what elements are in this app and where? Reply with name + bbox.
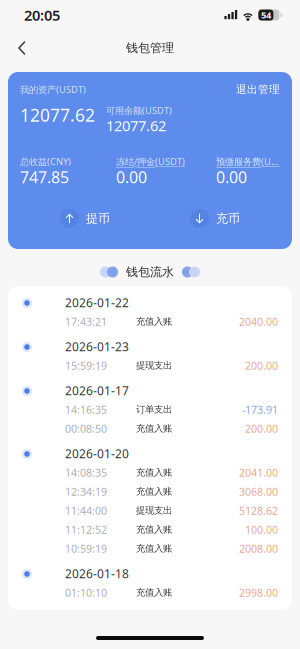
staticText: 15:59:19 [65, 358, 107, 373]
staticText: 充币 [216, 211, 240, 226]
staticText: 钱包管理 [126, 41, 174, 55]
staticText: 2026-01-22 [65, 294, 129, 310]
button[interactable]: 充币 [150, 206, 280, 230]
staticText: 2026-01-17 [65, 382, 129, 398]
staticText: 11:44:00 [65, 503, 107, 518]
staticText: 退出管理 [236, 83, 280, 96]
staticText: 54 [261, 9, 271, 21]
staticText: 提币 [86, 211, 110, 226]
staticText: 充值入账 [136, 486, 172, 497]
staticText: 0.00 [116, 166, 147, 188]
staticText: 14:08:35 [65, 465, 107, 480]
staticText: 充值入账 [136, 543, 172, 554]
button[interactable]: 退出管理 [236, 83, 280, 96]
staticText: 200.00 [245, 358, 278, 373]
staticText: 3068.00 [239, 484, 278, 499]
staticText: 17:43:21 [65, 314, 107, 329]
staticText: 我的资产(USDT) [20, 83, 86, 96]
staticText: 2008.00 [239, 541, 278, 556]
staticText: 00:08:50 [65, 421, 107, 436]
button[interactable]: 提币 [20, 206, 150, 230]
staticText: 12077.62 [20, 103, 95, 126]
staticText: 20:05 [24, 5, 60, 25]
staticText: 14:16:35 [65, 402, 107, 417]
staticText: 充值入账 [136, 467, 172, 478]
staticText: 0.00 [216, 166, 247, 188]
staticText: -173.91 [242, 402, 278, 417]
staticText: 充值入账 [136, 316, 172, 327]
staticText: 10:59:19 [65, 541, 107, 556]
staticText: 钱包流水 [126, 265, 174, 279]
staticText: 2026-01-23 [65, 338, 129, 354]
staticText: 5128.62 [239, 503, 278, 518]
staticText: 2040.00 [239, 314, 278, 329]
staticText: 充值入账 [136, 524, 172, 535]
staticText: 12077.62 [106, 116, 166, 135]
staticText: 可用余额(USDT) [106, 104, 172, 117]
staticText: 2026-01-20 [65, 445, 129, 461]
staticText: 订单支出 [136, 404, 172, 415]
staticText: 充值入账 [136, 587, 172, 598]
staticText: 总收益(CNY) [20, 155, 71, 168]
staticText: 12:34:19 [65, 484, 107, 499]
button[interactable]: Back [4, 31, 40, 65]
staticText: 提现支出 [136, 505, 172, 516]
staticText: 01:10:10 [65, 585, 107, 600]
staticText: 2026-01-18 [65, 565, 129, 581]
staticText: 2041.00 [239, 465, 278, 480]
staticText: 提现支出 [136, 360, 172, 371]
staticText: 11:12:52 [65, 522, 107, 537]
staticText: 充值入账 [136, 423, 172, 434]
staticText: 200.00 [245, 421, 278, 436]
staticText: 2998.00 [239, 585, 278, 600]
staticText: 747.85 [20, 166, 69, 188]
staticText: 预缴服务费(USDT) [216, 155, 280, 168]
staticText: 100.00 [245, 522, 278, 537]
staticText: 冻结/押金(USDT) [116, 155, 185, 168]
